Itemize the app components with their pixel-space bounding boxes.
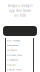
staticText: my bills bbox=[14, 13, 26, 17]
staticText: Categories bbox=[7, 58, 18, 61]
staticText: Bill tracker bbox=[7, 38, 20, 42]
staticText: Insights bbox=[7, 48, 17, 52]
staticText: app that tracks bbox=[9, 8, 31, 12]
staticText: Design a budget bbox=[7, 4, 32, 8]
staticText: Export data bbox=[7, 68, 21, 71]
staticText: Budget view bbox=[7, 53, 22, 56]
staticText: Reports bbox=[7, 63, 16, 66]
staticText: Renewals bbox=[7, 43, 18, 47]
